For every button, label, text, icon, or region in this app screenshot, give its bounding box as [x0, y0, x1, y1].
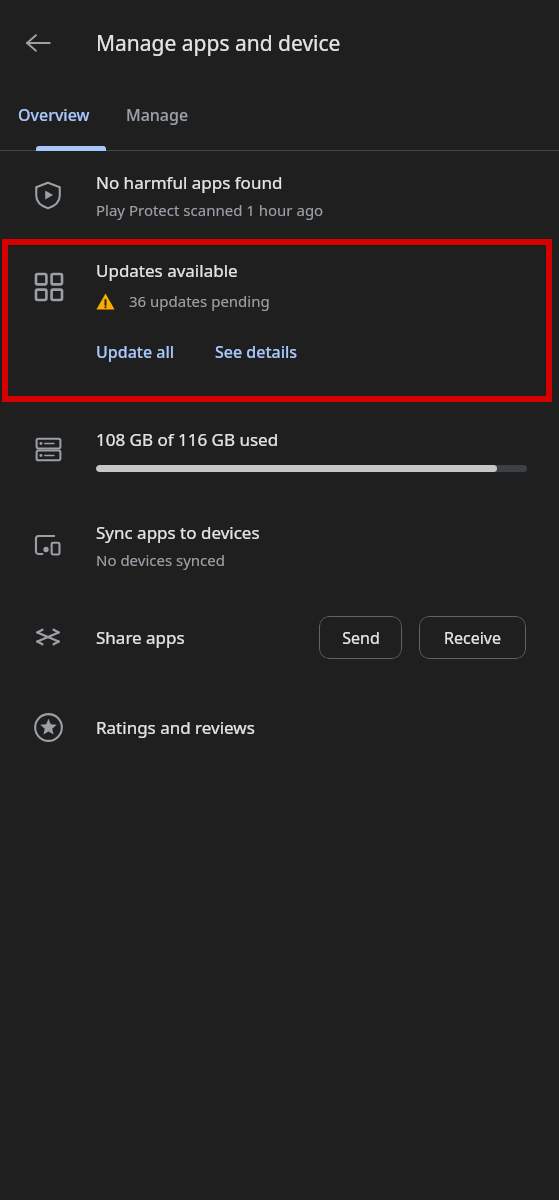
button[interactable]: 108 GB of 116 GB used	[0, 402, 559, 497]
staticText: Play Protect scanned 1 hour ago	[96, 200, 324, 220]
staticText: Send	[342, 627, 380, 649]
button[interactable]: Overview	[0, 86, 108, 150]
staticText: Receive	[444, 627, 501, 649]
button[interactable]: Updates available	[2, 239, 552, 402]
staticText: Manage	[126, 104, 189, 126]
staticText: Share apps	[96, 626, 185, 649]
staticText: Sync apps to devices	[96, 521, 260, 544]
button[interactable]: Receive	[419, 616, 526, 659]
button[interactable]: Back	[10, 15, 66, 71]
button[interactable]: No harmful apps found	[0, 151, 559, 239]
button[interactable]: Manage	[108, 86, 207, 150]
staticText: No devices synced	[96, 550, 225, 570]
staticText: 108 GB of 116 GB used	[96, 428, 279, 451]
staticText: Ratings and reviews	[96, 716, 255, 739]
button[interactable]: See details	[209, 337, 304, 367]
staticText: Update all	[96, 341, 175, 363]
button[interactable]: Send	[319, 616, 402, 659]
button[interactable]: Sync apps to devices	[0, 497, 559, 593]
staticText: 36 updates pending	[129, 291, 270, 311]
staticText: Manage apps and device	[96, 29, 341, 58]
staticText: Updates available	[96, 259, 238, 282]
button[interactable]: Update all	[90, 337, 181, 367]
staticText: Overview	[18, 104, 90, 126]
staticText: See details	[215, 341, 298, 363]
staticText: No harmful apps found	[96, 171, 283, 194]
button[interactable]: Ratings and reviews	[0, 681, 559, 773]
